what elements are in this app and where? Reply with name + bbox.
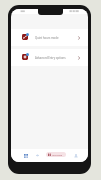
staticText: Quiet hours mode bbox=[35, 36, 59, 40]
button[interactable]: Dashboard bbox=[21, 151, 30, 160]
button[interactable]: Quiet hours mode bbox=[11, 29, 88, 46]
staticText: Advanced Entry options bbox=[35, 56, 66, 60]
button[interactable]: Tasks bbox=[33, 151, 42, 160]
button[interactable]: Message bbox=[46, 152, 66, 157]
button[interactable]: Advanced Entry options bbox=[11, 49, 88, 66]
staticText: Message bbox=[52, 153, 63, 156]
button[interactable]: Profile bbox=[71, 151, 80, 160]
